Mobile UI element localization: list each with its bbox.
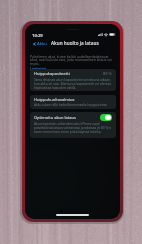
button[interactable]: Akku: [33, 41, 47, 47]
button[interactable]: Lisätietoja...: [30, 66, 49, 71]
button[interactable]: Optimoitu akun lataus: [34, 112, 112, 122]
staticText: Puhelimen akut, kuten kaikki uudelleenla…: [30, 54, 115, 66]
staticText: Akku: [37, 41, 47, 47]
staticText: 89 %: [103, 71, 112, 76]
staticText: Akun käyttöiän vähentämiseksi iPhone opp…: [34, 122, 112, 134]
staticText: Tämä ilmaisee akun kapasiteetin verrattu…: [34, 78, 112, 90]
staticText: Optimoitu akun lataus: [34, 115, 76, 120]
staticText: Huippukapasiteetti: [34, 71, 70, 76]
button[interactable]: Huippuhuoltovalmius: [34, 95, 112, 103]
staticText: 10:29: [32, 33, 43, 39]
button[interactable]: Optimoitu akun lataus: [100, 114, 112, 121]
staticText: Akun huolto ja lataus: [51, 40, 99, 46]
staticText: Akku tukee tällä hetkellä normaalia huip…: [34, 103, 108, 107]
staticText: Huippuhuoltovalmius: [34, 97, 75, 102]
